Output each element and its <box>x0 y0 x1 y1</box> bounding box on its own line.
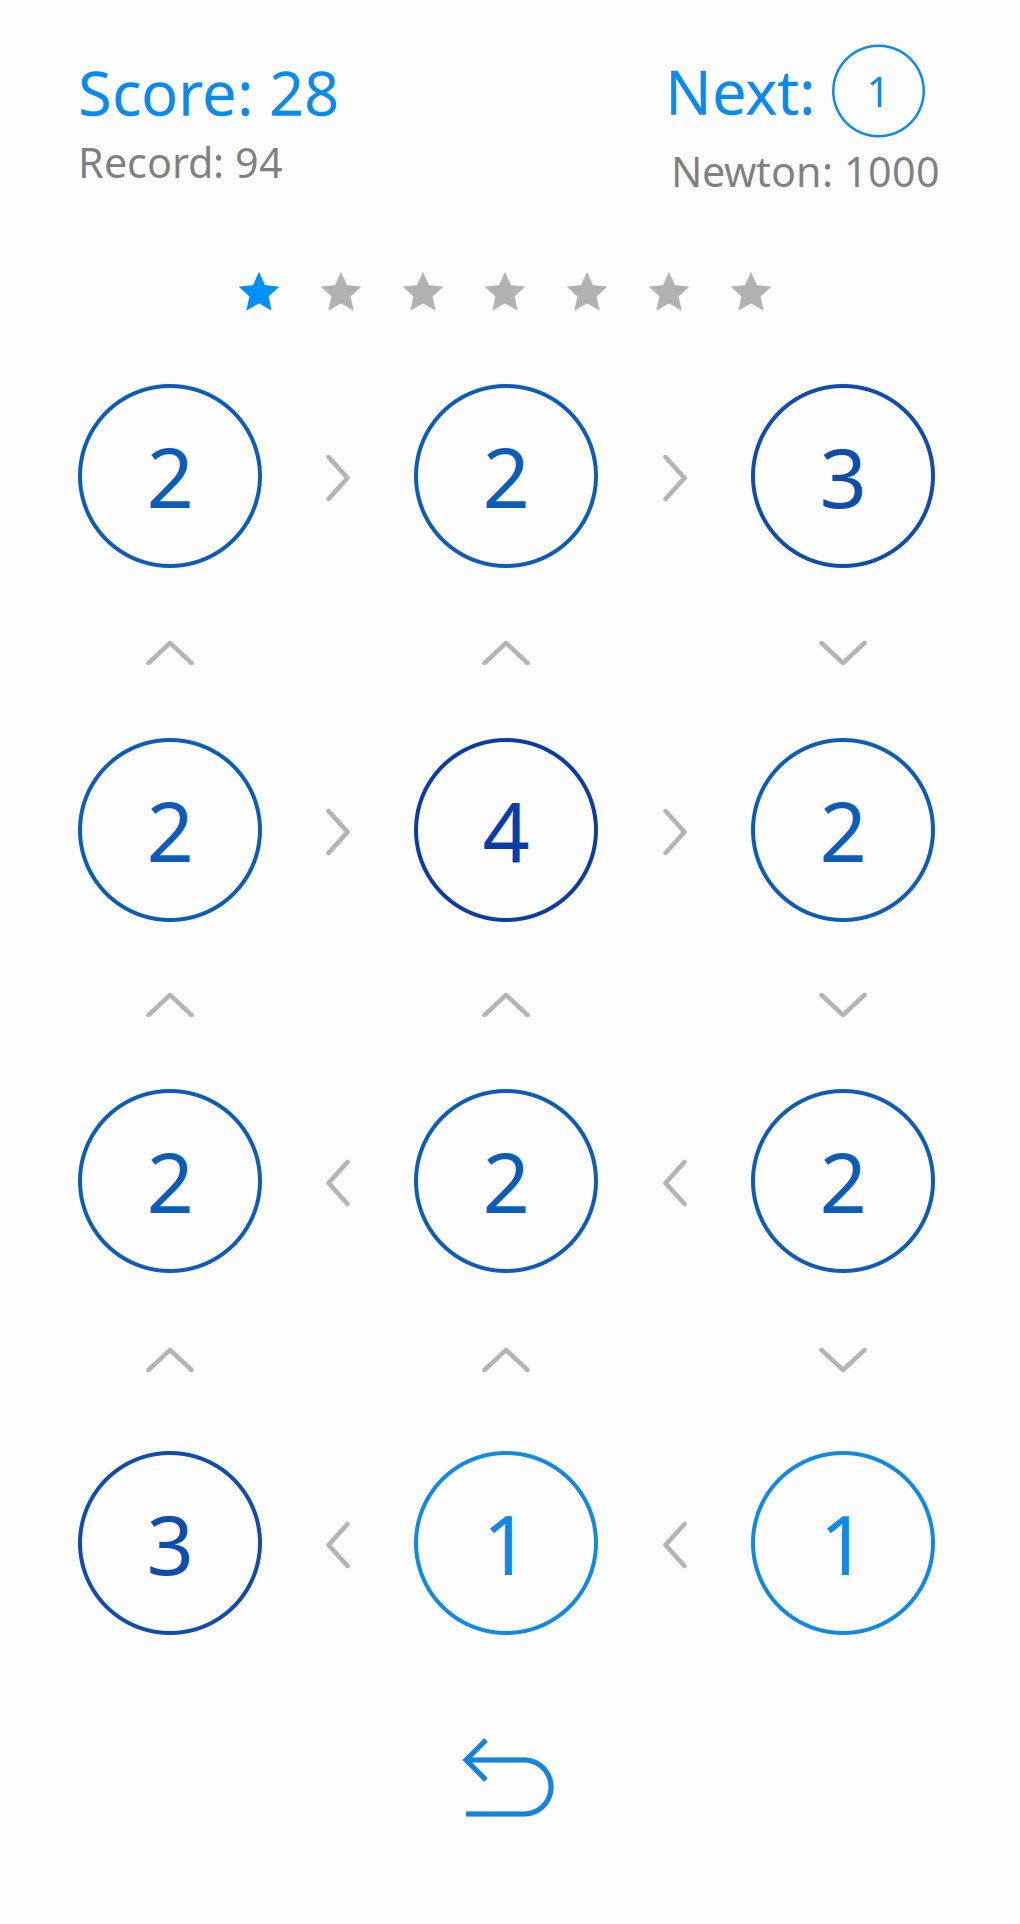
staticText: Score: 28 <box>78 51 339 133</box>
staticText: 2 <box>146 1126 193 1236</box>
button[interactable]: Tile 3 <box>751 384 935 568</box>
staticText: 1 <box>866 64 890 118</box>
staticText: Record: 94 <box>78 135 283 189</box>
staticText: 3 <box>819 421 866 531</box>
staticText: 1 <box>819 1488 866 1598</box>
button[interactable]: Tile 2 <box>751 1089 935 1273</box>
staticText: 2 <box>819 1126 866 1236</box>
button[interactable]: Undo <box>420 1702 590 1852</box>
staticText: 2 <box>819 775 866 885</box>
staticText: 1 <box>482 1488 529 1598</box>
staticText: 3 <box>146 1488 193 1598</box>
button[interactable]: Tile 2 <box>414 1089 598 1273</box>
button[interactable]: Tile 3 <box>78 1451 262 1635</box>
button[interactable]: Tile 2 <box>414 384 598 568</box>
staticText: 2 <box>146 421 193 531</box>
staticText: 2 <box>482 421 529 531</box>
button[interactable]: Tile 1 <box>414 1451 598 1635</box>
staticText: Next: <box>665 50 815 132</box>
staticText: Newton: 1000 <box>671 144 940 198</box>
button[interactable]: Tile 2 <box>78 384 262 568</box>
button[interactable]: Tile 2 <box>78 1089 262 1273</box>
button[interactable]: Tile 2 <box>78 738 262 922</box>
button[interactable]: Tile 4 <box>414 738 598 922</box>
button[interactable]: Tile 2 <box>751 738 935 922</box>
staticText: 2 <box>146 775 193 885</box>
staticText: 4 <box>482 775 529 885</box>
button[interactable]: Tile 1 <box>751 1451 935 1635</box>
staticText: 2 <box>482 1126 529 1236</box>
